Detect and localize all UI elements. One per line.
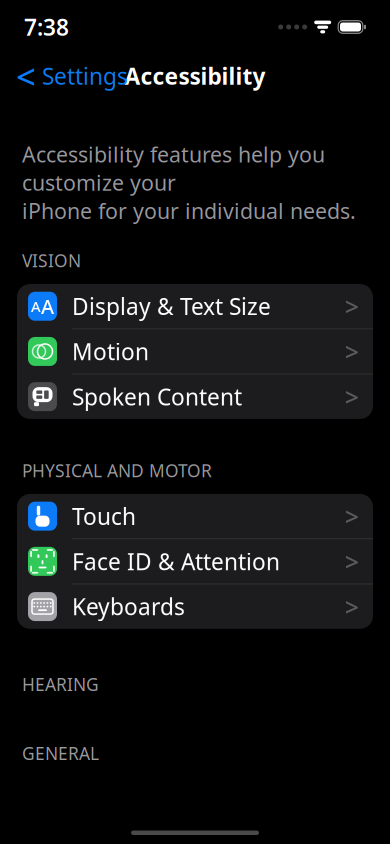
button[interactable]: Face ID & Attention	[17, 539, 373, 584]
staticText: Accessibility features help you customiz…	[22, 140, 356, 225]
button[interactable]: Touch	[17, 494, 373, 539]
staticText: GENERAL	[22, 742, 99, 765]
staticText: Accessibility	[124, 61, 265, 91]
staticText: VISION	[22, 249, 81, 272]
button[interactable]: <	[8, 48, 136, 104]
staticText: Face ID & Attention	[72, 546, 280, 576]
staticText: Display & Text Size	[72, 291, 271, 321]
staticText: Keyboards	[72, 591, 185, 622]
button[interactable]: Keyboards	[17, 584, 373, 629]
staticText: >	[344, 335, 358, 368]
staticText: >	[344, 545, 358, 578]
staticText: Spoken Content	[72, 382, 242, 412]
staticText: >	[344, 499, 358, 533]
staticText: Touch	[72, 501, 136, 531]
staticText: Motion	[72, 336, 149, 366]
staticText: >	[344, 289, 358, 323]
button[interactable]: Spoken Content	[17, 374, 373, 419]
button[interactable]: Motion	[17, 329, 373, 374]
staticText: PHYSICAL AND MOTOR	[22, 459, 212, 482]
staticText: A	[41, 293, 54, 320]
staticText: Settings	[42, 61, 128, 91]
button[interactable]: A	[17, 284, 373, 329]
staticText: >	[344, 590, 358, 623]
staticText: >	[344, 380, 358, 413]
staticText: HEARING	[22, 673, 99, 696]
staticText: 7:38	[24, 12, 69, 42]
staticText: A	[31, 296, 41, 316]
staticText: <	[16, 53, 36, 99]
